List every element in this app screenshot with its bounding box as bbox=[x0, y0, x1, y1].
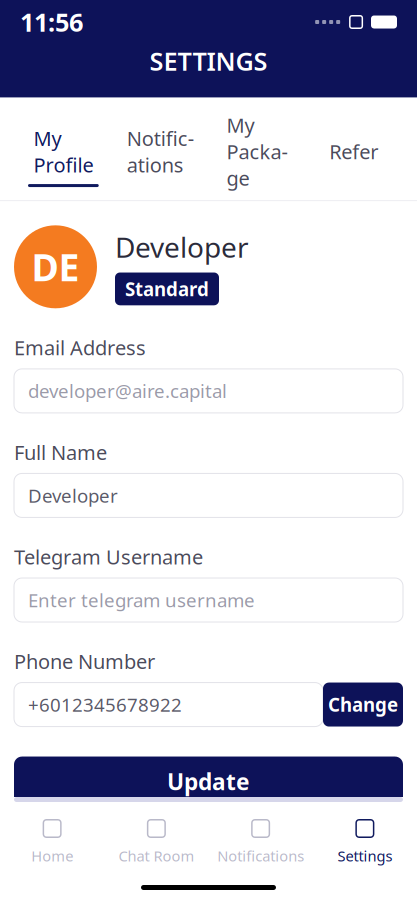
button[interactable]: Notifications bbox=[208, 816, 313, 865]
staticText: SETTINGS bbox=[149, 44, 267, 78]
staticText: +6012345678922 bbox=[28, 692, 182, 717]
staticText: Phone Number bbox=[14, 648, 155, 675]
staticText: Telegram Username bbox=[14, 543, 203, 570]
staticText: Home bbox=[31, 846, 73, 865]
staticText: 11:56 bbox=[20, 5, 83, 39]
staticText: Email Address bbox=[14, 334, 146, 361]
staticText: My Package bbox=[226, 112, 287, 191]
button[interactable]: Home bbox=[0, 816, 104, 865]
button[interactable]: Notifications bbox=[125, 111, 196, 187]
staticText: Update bbox=[167, 766, 250, 797]
staticText: Developer bbox=[28, 483, 118, 508]
staticText: Change bbox=[328, 692, 398, 717]
staticText: DE bbox=[31, 242, 79, 292]
staticText: Connect to Telegram bbox=[84, 828, 306, 859]
button[interactable]: Change bbox=[323, 683, 403, 727]
button[interactable]: Connect to Telegram bbox=[14, 819, 403, 869]
button[interactable]: Chat Room bbox=[104, 816, 208, 865]
button[interactable]: Refer bbox=[318, 124, 389, 174]
staticText: Notifications bbox=[217, 846, 304, 865]
staticText: Enter telegram username bbox=[28, 588, 255, 612]
staticText: Developer bbox=[115, 228, 249, 265]
button[interactable]: My Package bbox=[221, 98, 292, 200]
staticText: Refer bbox=[329, 138, 378, 165]
staticText: Full Name bbox=[14, 439, 107, 465]
button[interactable]: My Profile bbox=[28, 111, 99, 187]
staticText: Settings bbox=[337, 846, 392, 865]
staticText: My Profile bbox=[33, 125, 93, 178]
button[interactable]: Update bbox=[14, 757, 403, 807]
button[interactable]: Settings bbox=[313, 816, 417, 865]
staticText: Notifications bbox=[127, 125, 194, 178]
staticText: Chat Room bbox=[118, 846, 194, 865]
staticText: Standard bbox=[125, 276, 209, 301]
staticText: developer@aire.capital bbox=[28, 378, 227, 403]
button[interactable]: Standard bbox=[115, 272, 219, 305]
